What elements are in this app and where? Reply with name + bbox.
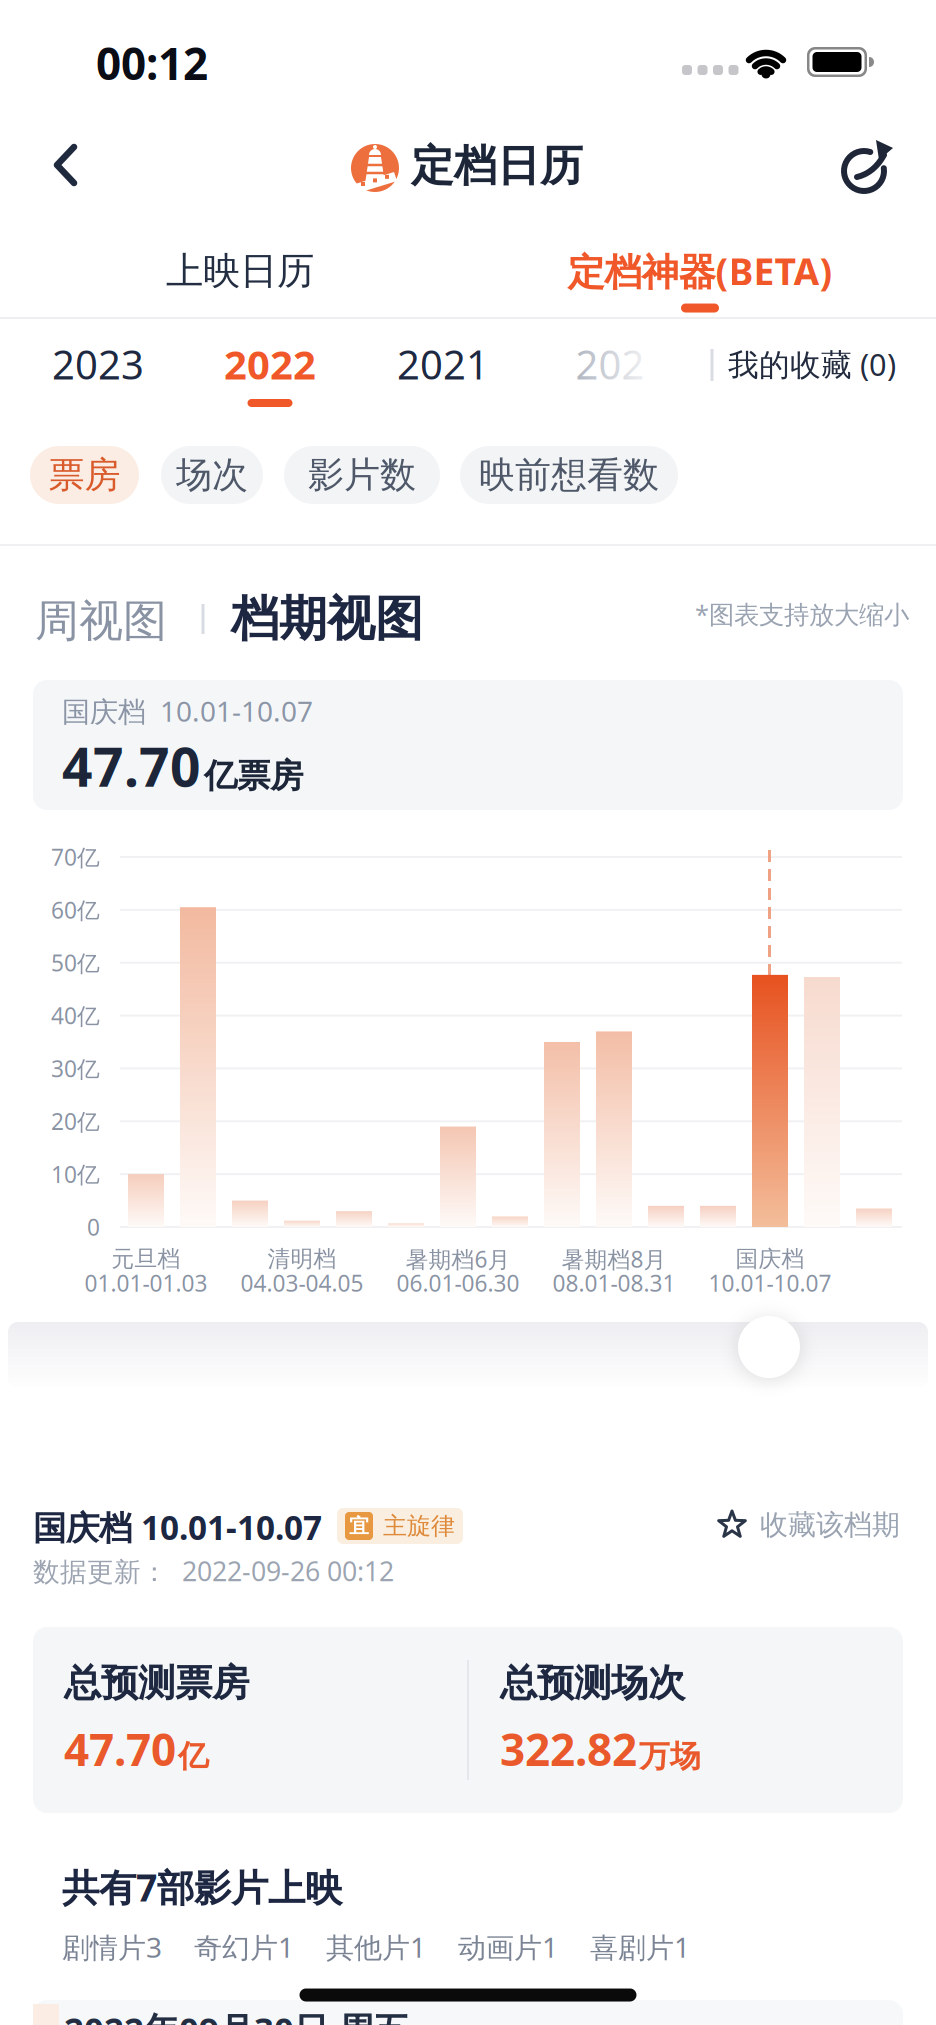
staticText: 主旋律 — [383, 1511, 455, 1541]
staticText: 动画片1 — [458, 1928, 558, 1966]
staticText: 06.01-06.30 — [396, 1268, 519, 1298]
button[interactable]: 我的收藏 (0) — [707, 326, 917, 402]
staticText: 10亿 — [51, 1159, 100, 1189]
button[interactable]: 2023 — [33, 326, 163, 402]
staticText: 暑期档8月 — [561, 1244, 666, 1274]
staticText: 322.82 — [500, 1720, 637, 1778]
staticText: 国庆档 10.01-10.07 — [62, 692, 313, 730]
staticText: 40亿 — [51, 1000, 100, 1031]
staticText: 剧情片3 — [62, 1928, 162, 1966]
button[interactable]: 2022 — [205, 326, 335, 402]
staticText: 04.03-04.05 — [240, 1268, 363, 1298]
button[interactable]: Back — [32, 130, 102, 200]
staticText: 档期视图 — [231, 589, 423, 648]
button[interactable]: 映前想看数 — [460, 446, 678, 504]
staticText: 共有7部影片上映 — [62, 1862, 342, 1912]
staticText: 47.70 — [64, 1720, 176, 1778]
button[interactable]: 202 — [555, 326, 665, 402]
button[interactable]: 定档神器(BETA) — [530, 233, 870, 309]
staticText: 宜 — [349, 1514, 369, 1538]
button[interactable]: 2022年09月30日 周五 — [33, 2000, 903, 2025]
staticText: 01.01-01.03 — [84, 1268, 207, 1298]
staticText: 清明档 — [267, 1245, 336, 1273]
staticText: 47.70 — [62, 731, 201, 801]
button[interactable]: 上映日历 — [90, 233, 390, 309]
staticText: 上映日历 — [166, 248, 314, 294]
staticText: 万场 — [639, 1737, 701, 1775]
button[interactable]: 收藏该档期 — [716, 1508, 900, 1542]
staticText: 国庆档 — [735, 1245, 804, 1273]
staticText: 票房 — [48, 453, 120, 497]
button[interactable]: 2021 — [378, 326, 508, 402]
staticText: 场次 — [176, 453, 248, 497]
button[interactable]: 周视图 — [26, 588, 176, 654]
staticText: 周视图 — [35, 594, 167, 648]
staticText: 50亿 — [51, 948, 100, 978]
button[interactable]: 档期视图 — [222, 586, 432, 652]
button[interactable]: Slider — [738, 1316, 800, 1378]
staticText: 奇幻片1 — [194, 1928, 294, 1966]
staticText: 2022 — [224, 337, 316, 390]
staticText: 总预测场次 — [500, 1660, 685, 1706]
button[interactable]: 场次 — [161, 446, 263, 504]
staticText: 元旦档 — [111, 1245, 180, 1273]
staticText: 00:12 — [96, 34, 208, 92]
staticText: 亿 — [178, 1737, 209, 1775]
staticText: 映前想看数 — [479, 453, 659, 497]
staticText: 0 — [87, 1212, 100, 1242]
staticText: 2021 — [397, 337, 489, 390]
staticText: 其他片1 — [326, 1928, 426, 1966]
staticText: 2022年09月30日 周五 — [64, 2006, 409, 2025]
staticText: 定档日历 — [411, 140, 583, 192]
staticText: 20亿 — [51, 1106, 100, 1136]
staticText: 2023 — [52, 337, 144, 390]
button[interactable]: 票房 — [30, 446, 139, 504]
button[interactable]: 影片数 — [284, 446, 440, 504]
staticText: 国庆档 10.01-10.07 — [33, 1505, 322, 1549]
staticText: 定档神器(BETA) — [567, 246, 832, 296]
staticText: 影片数 — [308, 453, 416, 497]
staticText: 数据更新： 2022-09-26 00:12 — [33, 1553, 394, 1589]
staticText: 10.01-10.07 — [708, 1268, 831, 1298]
staticText: 我的收藏 (0) — [728, 344, 896, 384]
staticText: 30亿 — [51, 1053, 100, 1083]
staticText: 亿票房 — [204, 755, 303, 796]
staticText: 08.01-08.31 — [552, 1268, 675, 1298]
staticText: 60亿 — [51, 895, 100, 925]
staticText: 收藏该档期 — [760, 1508, 900, 1542]
staticText: 202 — [575, 337, 644, 390]
staticText: 总预测票房 — [64, 1660, 249, 1706]
button[interactable]: Refresh — [831, 132, 901, 202]
staticText: *图表支持放大缩小 — [695, 597, 909, 631]
staticText: 喜剧片1 — [590, 1928, 690, 1966]
staticText: 70亿 — [51, 842, 100, 872]
staticText: 暑期档6月 — [405, 1244, 510, 1274]
